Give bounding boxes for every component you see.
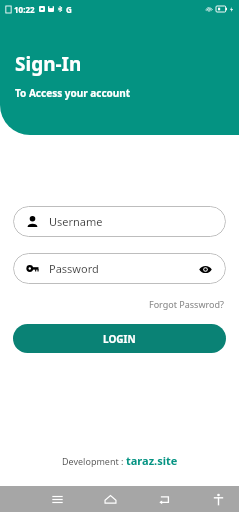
button[interactable]: Home	[97, 486, 123, 512]
button[interactable]: Accessibility	[205, 486, 231, 512]
button[interactable]: Forgot Passwrod?	[147, 296, 226, 312]
button[interactable]: LOGIN	[13, 324, 226, 353]
staticText: G	[66, 4, 72, 15]
button[interactable]: Show password	[197, 261, 213, 277]
button[interactable]: Username	[13, 206, 226, 237]
staticText: taraz.site	[126, 453, 178, 468]
staticText: Development :	[62, 455, 126, 467]
staticText: Password	[49, 261, 99, 276]
staticText: Username	[49, 214, 103, 229]
button[interactable]: taraz.site	[126, 453, 178, 468]
staticText: 10:22	[14, 4, 35, 15]
staticText: LOGIN	[103, 332, 136, 346]
button[interactable]: Menu	[44, 486, 70, 512]
staticText: Sign-In	[15, 51, 82, 77]
button[interactable]: Password	[13, 253, 226, 284]
staticText: To Access your account	[15, 86, 131, 100]
staticText: Forgot Passwrod?	[149, 298, 224, 310]
button[interactable]: Back	[151, 486, 177, 512]
